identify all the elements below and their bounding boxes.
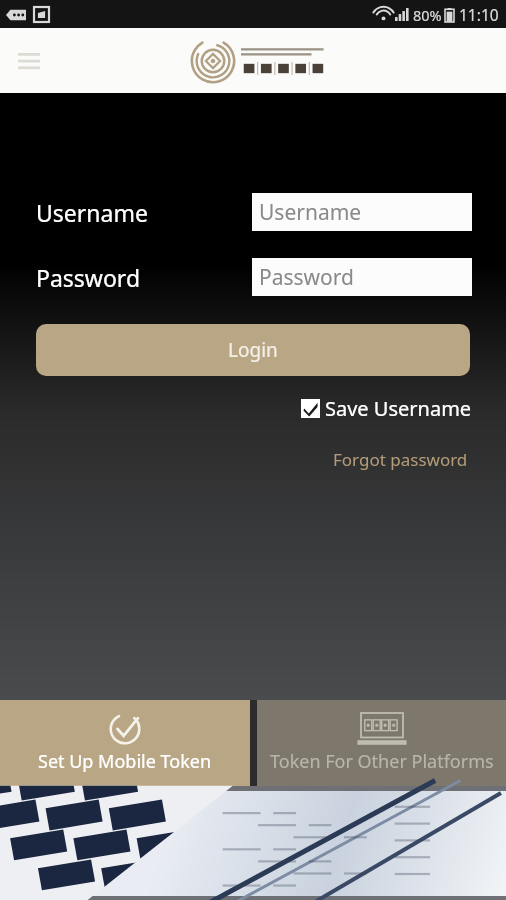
- staticText: Save Username: [325, 395, 472, 422]
- button[interactable]: Username: [252, 193, 472, 231]
- button[interactable]: Set Up Mobile Token: [0, 700, 250, 786]
- staticText: Login: [228, 337, 278, 363]
- button[interactable]: Forgot password: [329, 444, 472, 475]
- staticText: 80%: [413, 5, 442, 25]
- staticText: Password: [259, 263, 354, 292]
- staticText: Username: [36, 197, 148, 228]
- staticText: Username: [259, 198, 362, 227]
- staticText: Token For Other Platforms: [270, 749, 494, 774]
- staticText: Set Up Mobile Token: [38, 749, 212, 774]
- staticText: Password: [36, 262, 141, 293]
- staticText: 11:10: [459, 4, 499, 25]
- button[interactable]: Token For Other Platforms: [257, 700, 506, 786]
- button[interactable]: Login: [36, 324, 470, 376]
- button[interactable]: Menu: [10, 42, 48, 80]
- button[interactable]: Password: [252, 258, 472, 296]
- staticText: Forgot password: [333, 448, 468, 471]
- button[interactable]: Save Username: [301, 395, 472, 422]
